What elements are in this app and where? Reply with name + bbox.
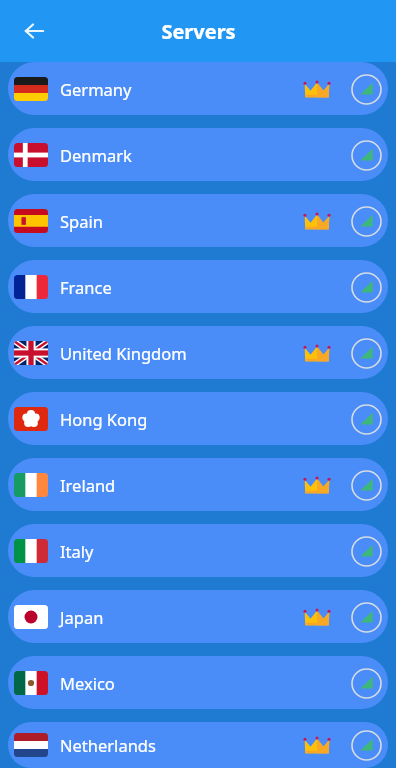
button[interactable]: Mexico [8, 656, 388, 709]
button[interactable]: France [8, 260, 388, 313]
button[interactable]: Back [14, 11, 54, 51]
button[interactable]: Connect to Ireland [348, 467, 384, 503]
button[interactable]: Connect to Hong Kong [348, 401, 384, 437]
staticText: Servers [161, 18, 236, 45]
staticText: United Kingdom [60, 342, 303, 364]
staticText: Hong Kong [60, 408, 303, 430]
button[interactable]: Italy [8, 524, 388, 577]
staticText: Denmark [60, 144, 303, 166]
button[interactable]: Connect to Germany [348, 71, 384, 107]
staticText: France [60, 276, 303, 298]
button[interactable]: Connect to Denmark [348, 137, 384, 173]
staticText: Italy [60, 540, 303, 562]
button[interactable]: Connect to Japan [348, 599, 384, 635]
button[interactable]: Connect to France [348, 269, 384, 305]
button[interactable]: Connect to Spain [348, 203, 384, 239]
button[interactable]: Connect to Italy [348, 533, 384, 569]
button[interactable]: Spain [8, 194, 388, 247]
button[interactable]: Ireland [8, 458, 388, 511]
button[interactable]: United Kingdom [8, 326, 388, 379]
button[interactable]: Connect to United Kingdom [348, 335, 384, 371]
button[interactable]: Denmark [8, 128, 388, 181]
staticText: Netherlands [60, 734, 303, 756]
button[interactable]: Japan [8, 590, 388, 643]
button[interactable]: Netherlands [8, 722, 388, 768]
button[interactable]: Hong Kong [8, 392, 388, 445]
staticText: Mexico [60, 672, 303, 694]
button[interactable]: Germany [8, 62, 388, 115]
staticText: Ireland [60, 474, 303, 496]
staticText: Germany [60, 78, 303, 100]
button[interactable]: Connect to Netherlands [348, 727, 384, 763]
staticText: Japan [60, 606, 303, 628]
button[interactable]: Connect to Mexico [348, 665, 384, 701]
staticText: Spain [60, 210, 303, 232]
